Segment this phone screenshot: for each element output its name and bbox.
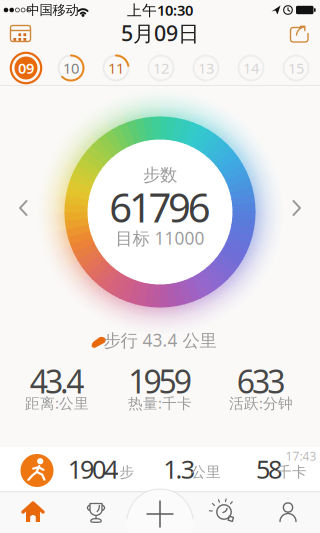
staticText: 步行 43.4 公里 [103,328,216,351]
button[interactable]: 11 [0,0,320,533]
button[interactable]: Achievements [0,0,320,533]
button[interactable]: 13 [0,0,320,533]
button[interactable]: Home [0,0,320,533]
button[interactable]: Add activity [0,0,320,533]
button[interactable]: Reminders [0,0,320,533]
button[interactable]: 10 [0,0,320,533]
button[interactable]: 12 [0,0,320,533]
button[interactable]: 1904 [0,0,320,533]
staticText: 中国移动 [26,2,78,18]
button[interactable]: Next day [0,0,320,533]
staticText: 1904 [68,452,118,486]
button[interactable]: Calendar [0,0,320,533]
staticText: 12 [153,58,169,78]
staticText: 步数 [143,164,177,186]
staticText: 活跃:分钟 [229,393,293,413]
staticText: 58 [256,452,282,486]
staticText: 1959 [128,360,192,402]
staticText: 15 [288,58,304,78]
staticText: 633 [237,360,285,402]
staticText: 公里 [191,463,221,481]
staticText: 14 [243,58,259,78]
button[interactable]: 09 [0,0,320,533]
button[interactable]: 14 [0,0,320,533]
button[interactable]: Previous day [0,0,320,533]
staticText: 距离:公里 [25,393,89,413]
staticText: 13 [198,58,214,78]
staticText: 千卡 [277,463,307,481]
staticText: 5月09日 [121,19,199,47]
button[interactable]: 15 [0,0,320,533]
staticText: 11 [108,58,124,78]
staticText: 上午10:30 [127,0,193,20]
button[interactable]: Share [0,0,320,533]
staticText: 热量:千卡 [128,393,192,413]
staticText: 目标 11000 [115,226,204,249]
staticText: 43.4 [30,360,84,402]
staticText: 1.3 [163,452,195,486]
staticText: 61796 [109,180,211,233]
staticText: 17:43 [285,448,316,464]
staticText: 10 [63,58,79,78]
staticText: 09 [18,58,34,78]
button[interactable]: Profile [0,0,320,533]
staticText: 步 [119,463,134,481]
